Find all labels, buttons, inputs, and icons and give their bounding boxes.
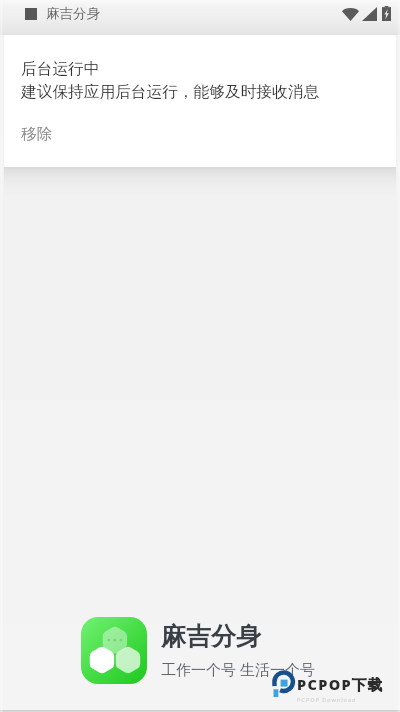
staticText: 后台运行中 [21,59,100,79]
staticText: 麻吉分身 [161,621,261,652]
button[interactable]: 后台运行中 [4,35,396,167]
staticText: PCPOP Download [297,696,357,703]
staticText: 移除 [21,124,53,144]
button[interactable]: 移除 [21,124,53,144]
staticText: PCPOP下载 [297,674,384,694]
staticText: 麻吉分身 [46,5,100,22]
staticText: 工作一个号 生活一个号 [161,659,315,679]
staticText: 建议保持应用后台运行，能够及时接收消息 [21,82,320,102]
